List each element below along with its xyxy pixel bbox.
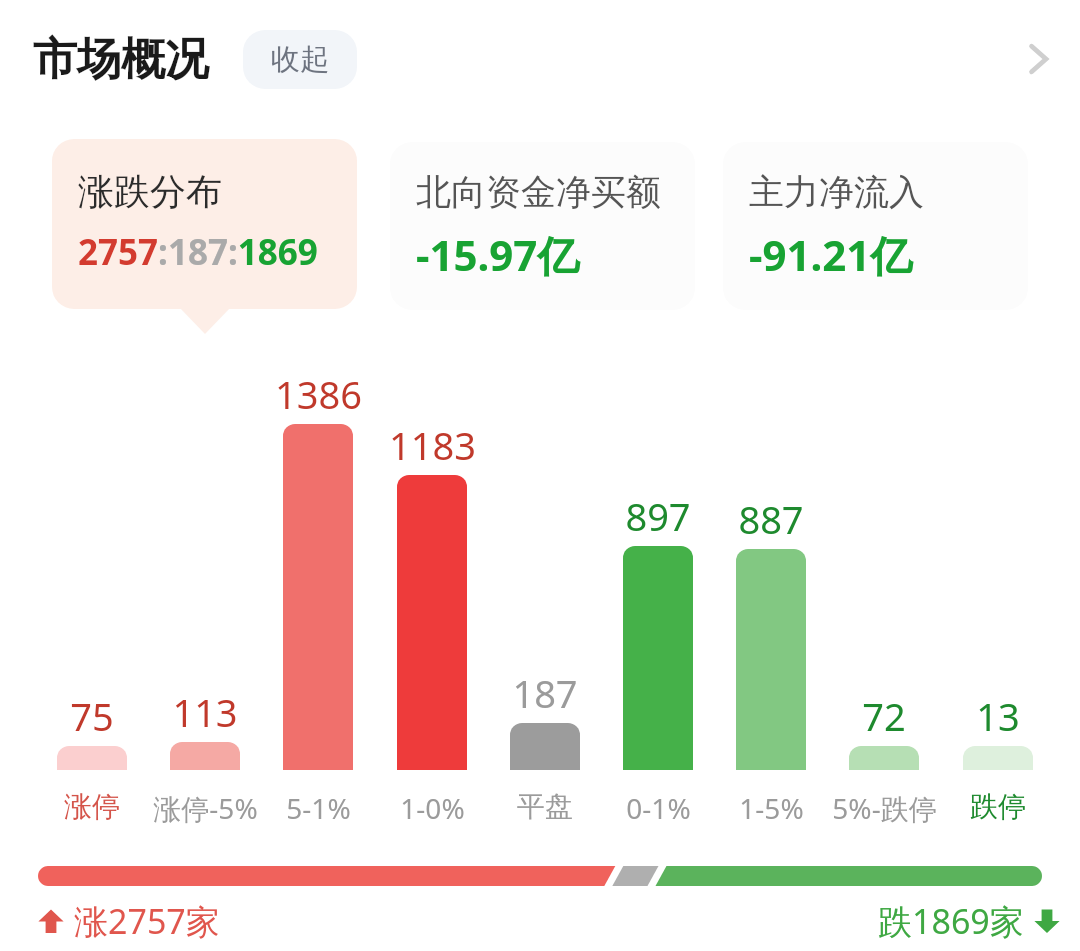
staticText: 跌1869家 bbox=[878, 898, 1024, 944]
staticText: 72 bbox=[862, 690, 906, 742]
staticText: 5-1% bbox=[286, 789, 351, 827]
staticText: 75 bbox=[70, 690, 114, 742]
staticText: 1-0% bbox=[400, 789, 465, 827]
button[interactable]: 主力净流入 bbox=[723, 142, 1028, 310]
staticText: 2757:187:1869 bbox=[78, 228, 318, 276]
staticText: 5%-跌停 bbox=[832, 789, 937, 827]
staticText: 113 bbox=[172, 686, 238, 738]
staticText: 1183 bbox=[389, 419, 476, 471]
button[interactable]: 跌1869家 bbox=[878, 898, 1062, 944]
staticText: 887 bbox=[738, 493, 804, 545]
staticText: -91.21亿 bbox=[749, 226, 913, 283]
staticText: -15.97亿 bbox=[416, 226, 580, 283]
staticText: 主力净流入 bbox=[749, 170, 924, 214]
staticText: 收起 bbox=[271, 41, 329, 78]
staticText: 897 bbox=[625, 490, 691, 542]
staticText: 13 bbox=[976, 690, 1020, 742]
button[interactable]: 北向资金净买额 bbox=[390, 142, 695, 310]
staticText: 0-1% bbox=[626, 789, 691, 827]
button[interactable]: 收起 bbox=[243, 30, 357, 89]
other: Down bbox=[1032, 906, 1062, 936]
button[interactable]: More bbox=[996, 17, 1080, 101]
staticText: 跌停 bbox=[970, 789, 1026, 824]
staticText: 187 bbox=[512, 667, 578, 719]
staticText: 涨2757家 bbox=[74, 898, 220, 944]
staticText: 1-5% bbox=[739, 789, 804, 827]
staticText: 涨跌分布 bbox=[78, 169, 222, 214]
button[interactable]: Up bbox=[36, 898, 220, 944]
staticText: 涨停-5% bbox=[153, 789, 258, 827]
staticText: 市场概况 bbox=[33, 32, 209, 87]
staticText: 平盘 bbox=[517, 789, 573, 824]
staticText: 涨停 bbox=[64, 789, 120, 824]
staticText: 1386 bbox=[275, 368, 362, 420]
button[interactable]: 涨跌分布 bbox=[52, 139, 357, 309]
staticText: 北向资金净买额 bbox=[416, 170, 661, 214]
other: Up bbox=[36, 906, 66, 936]
